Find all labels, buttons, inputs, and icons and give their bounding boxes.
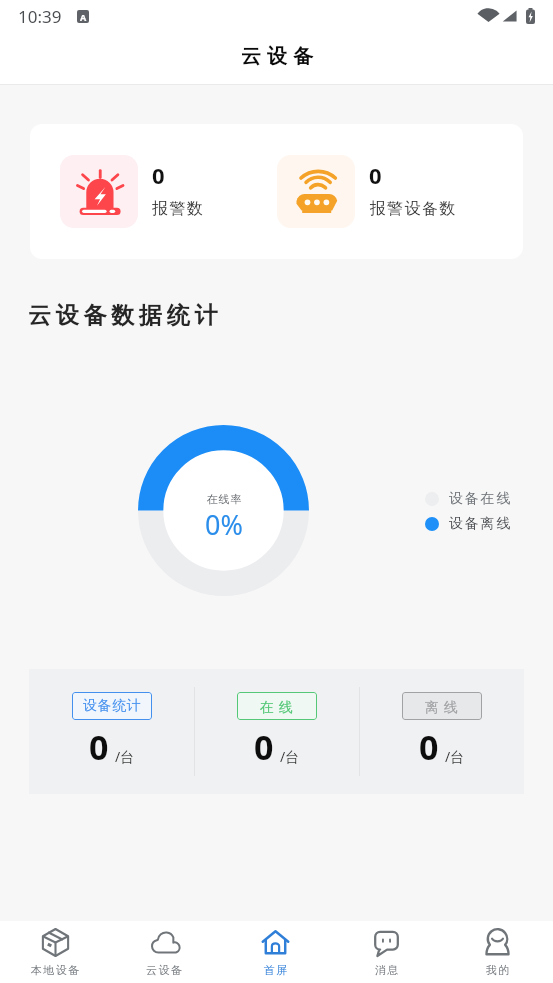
staticText: 0% [205,506,243,543]
staticText: 本地设备 [30,963,80,977]
button[interactable]: 首屏 [220,921,331,983]
staticText: 离 线 [425,697,459,716]
staticText: 在线率 [206,492,242,506]
staticText: 0 [419,724,439,770]
staticText: /台 [445,747,465,766]
staticText: 0 [152,160,165,190]
button[interactable]: 设备统计 [29,669,194,794]
button[interactable]: 消息 [331,921,442,983]
staticText: 设备统计 [83,697,142,715]
button[interactable]: 云设备 [110,921,220,983]
staticText: 在 线 [260,697,294,716]
staticText: 10:39 [18,5,62,28]
staticText: 首屏 [263,963,288,977]
staticText: 消息 [374,963,399,977]
staticText: 设备在线 [449,490,513,508]
staticText: 云设备 [238,44,316,69]
button[interactable]: 本地设备 [0,921,110,983]
staticText: 云设备 [146,963,184,977]
staticText: 0 [89,724,109,770]
button[interactable]: 我的 [442,921,553,983]
staticText: 0 [254,724,274,770]
staticText: /台 [280,747,300,766]
button[interactable]: 在 线 [195,669,359,794]
staticText: /台 [115,747,135,766]
staticText: 云设备数据统计 [28,301,222,330]
staticText: 0 [369,160,382,190]
button[interactable]: 0 [30,124,523,259]
staticText: 设备离线 [449,515,513,533]
staticText: A [80,11,87,23]
staticText: 报警设备数 [369,199,456,219]
staticText: 报警数 [152,199,205,219]
staticText: 我的 [485,963,510,977]
button[interactable]: 离 线 [360,669,524,794]
